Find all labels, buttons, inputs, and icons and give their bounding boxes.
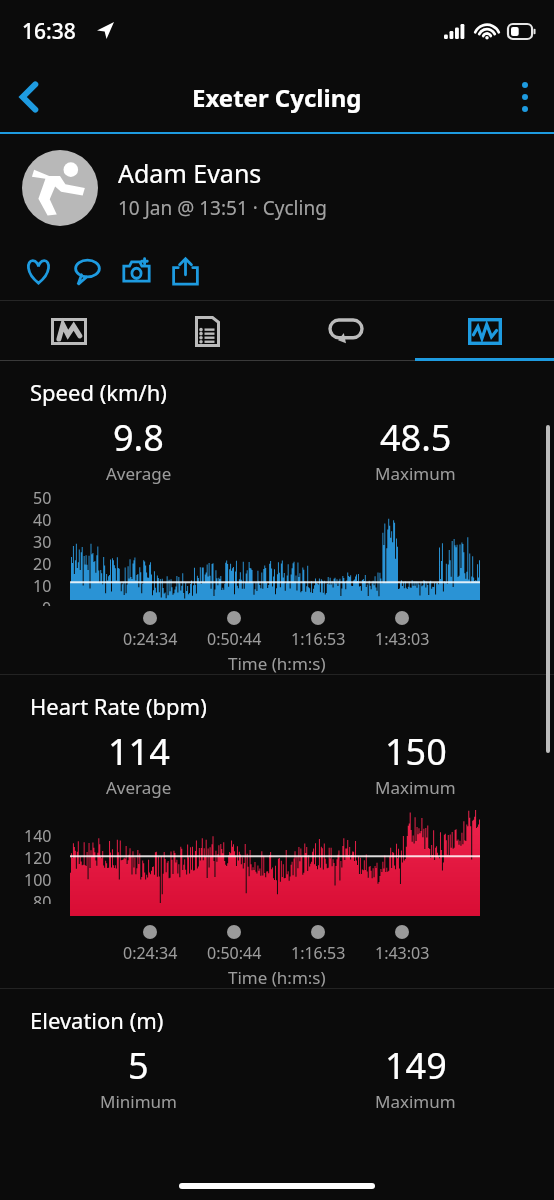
staticText: Maximum — [375, 776, 456, 799]
button[interactable]: Details — [138, 301, 276, 361]
staticText: 0:24:34 — [123, 628, 178, 650]
staticText: 0:24:34 — [123, 942, 178, 964]
staticText: Elevation (m) — [30, 1005, 164, 1035]
staticText: 114 — [108, 727, 170, 776]
button[interactable]: Laps — [276, 301, 415, 361]
staticText: Maximum — [375, 1090, 456, 1113]
staticText: Average — [106, 462, 172, 485]
staticText: 16:38 — [22, 17, 76, 46]
staticText: Time (h:m:s) — [228, 966, 326, 989]
staticText: Speed (km/h) — [30, 377, 167, 407]
staticText: 1:16:53 — [291, 942, 346, 964]
staticText: 0 — [42, 597, 52, 606]
staticText: 10 Jan @ 13:51 · Cycling — [118, 195, 327, 221]
button[interactable]: Add photo — [112, 245, 161, 297]
staticText: 20 — [33, 553, 52, 575]
button[interactable]: Charts — [415, 301, 554, 361]
staticText: 80 — [33, 891, 52, 904]
staticText: 10 — [33, 575, 52, 597]
staticText: Time (h:m:s) — [228, 652, 326, 675]
staticText: 1:43:03 — [375, 942, 430, 964]
staticText: 150 — [385, 727, 447, 776]
staticText: 0:50:44 — [207, 628, 262, 650]
staticText: 0:50:44 — [207, 942, 262, 964]
staticText: 100 — [24, 869, 52, 891]
staticText: Heart Rate (bpm) — [30, 691, 207, 721]
staticText: 140 — [24, 825, 52, 847]
button[interactable]: Back — [0, 68, 58, 126]
button[interactable]: Like — [14, 245, 63, 297]
staticText: 120 — [24, 847, 52, 869]
staticText: Average — [106, 776, 172, 799]
staticText: 48.5 — [380, 413, 452, 462]
button[interactable]: Map — [0, 301, 138, 361]
staticText: Exeter Cycling — [192, 81, 362, 114]
button[interactable]: More options — [496, 68, 554, 126]
staticText: 149 — [385, 1041, 447, 1090]
staticText: 9.8 — [113, 413, 164, 462]
staticText: Adam Evans — [118, 156, 262, 190]
button[interactable]: Adam Evans — [0, 134, 554, 242]
staticText: Maximum — [375, 462, 456, 485]
button[interactable]: Share — [161, 245, 210, 297]
staticText: 50 — [33, 487, 52, 509]
staticText: 1:43:03 — [375, 628, 430, 650]
button[interactable]: Comment — [63, 245, 112, 297]
staticText: Minimum — [100, 1090, 177, 1113]
staticText: 1:16:53 — [291, 628, 346, 650]
staticText: 30 — [33, 531, 52, 553]
staticText: 40 — [33, 509, 52, 531]
staticText: 5 — [128, 1041, 149, 1090]
